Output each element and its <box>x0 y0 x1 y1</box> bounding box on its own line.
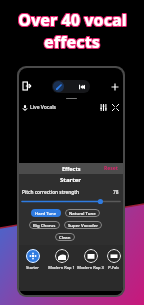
staticText: Over 40 vocal <box>19 10 128 32</box>
staticText: Over 40 vocal <box>19 9 128 31</box>
staticText: Starter <box>60 176 82 184</box>
staticText: Big Chorus <box>33 222 56 228</box>
button[interactable]: Modern Rap 1 <box>47 249 76 270</box>
staticText: Natural Tune <box>69 210 96 216</box>
staticText: Effects <box>62 165 81 172</box>
staticText: Over 40 vocal <box>18 9 127 31</box>
staticText: Over 40 vocal <box>18 10 127 32</box>
staticText: P-Fab <box>108 265 119 270</box>
staticText: effects <box>44 32 100 54</box>
staticText: Clean <box>59 234 71 240</box>
staticText: Over 40 vocal <box>17 10 126 32</box>
button[interactable]: Big Chorus <box>29 221 60 229</box>
staticText: Modern Rap 1 <box>48 265 75 270</box>
button[interactable]: Previous <box>76 81 87 92</box>
staticText: effects <box>45 31 101 53</box>
staticText: Starter <box>26 265 39 270</box>
staticText: Over 40 vocal <box>18 10 127 32</box>
button[interactable]: Edit <box>53 81 64 92</box>
staticText: Over 40 vocal <box>18 8 127 30</box>
staticText: Hard Tune <box>35 210 57 216</box>
button[interactable]: Mixer <box>99 103 108 112</box>
staticText: effects <box>45 32 101 54</box>
button[interactable]: Hard Tune <box>31 209 61 217</box>
staticText: effects <box>44 31 100 53</box>
button[interactable]: Add <box>109 81 121 93</box>
staticText: Super Vocoder <box>68 222 98 228</box>
staticText: Over 40 vocal <box>17 9 126 31</box>
staticText: effects <box>44 30 100 52</box>
button[interactable]: Modern Rap 3 <box>76 249 105 270</box>
staticText: Modern Rap 3 <box>77 265 104 270</box>
button[interactable]: Exit <box>21 80 33 92</box>
button[interactable]: Natural Tune <box>65 209 100 217</box>
staticText: effects <box>45 31 101 53</box>
button[interactable]: Pitch slider <box>22 198 120 205</box>
staticText: Pitch correction strength <box>22 189 80 196</box>
staticText: Reset <box>104 165 118 172</box>
staticText: Live Vocals <box>30 104 56 111</box>
staticText: Over 40 vocal <box>17 9 126 31</box>
staticText: Over 40 vocal <box>19 8 128 30</box>
staticText: effects <box>44 30 100 52</box>
button[interactable]: Super Vocoder <box>64 221 102 229</box>
staticText: effects <box>44 32 100 54</box>
button[interactable]: P-Fab <box>105 249 122 270</box>
staticText: Over 40 vocal <box>19 9 128 31</box>
staticText: 78 <box>113 189 119 196</box>
staticText: effects <box>43 31 99 53</box>
staticText: effects <box>45 30 101 52</box>
staticText: Over 40 vocal <box>17 8 126 30</box>
button[interactable]: Reset <box>99 163 123 174</box>
button[interactable]: Expand <box>111 103 120 112</box>
staticText: effects <box>43 30 99 52</box>
staticText: Over 40 vocal <box>18 8 127 30</box>
button[interactable]: Clean <box>55 233 75 241</box>
staticText: effects <box>43 32 99 54</box>
button[interactable]: Starter <box>19 249 47 270</box>
staticText: effects <box>43 31 99 53</box>
